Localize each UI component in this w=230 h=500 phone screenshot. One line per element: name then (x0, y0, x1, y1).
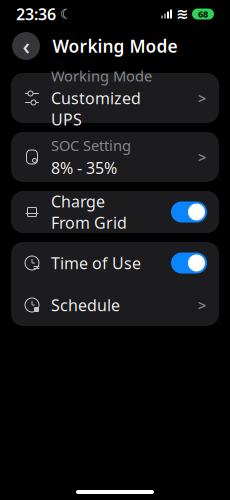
staticText: 68 (198, 8, 208, 20)
staticText: > (198, 147, 206, 167)
staticText: Working Mode (52, 34, 177, 57)
staticText: ≋ (176, 6, 188, 22)
staticText: Working Mode (51, 66, 152, 85)
staticText: 8% - 35% (51, 157, 117, 178)
button[interactable]: Charge From Grid (11, 191, 219, 233)
staticText: > (198, 295, 206, 315)
button[interactable]: Schedule (11, 284, 219, 326)
button[interactable]: SOC Setting (11, 132, 219, 182)
staticText: Charge From Grid (51, 191, 127, 233)
staticText: 23:36 (16, 3, 56, 25)
button[interactable]: Back (12, 32, 40, 60)
staticText: > (198, 88, 206, 108)
staticText: Time of Use (51, 252, 141, 274)
staticText: SOC Setting (51, 136, 131, 155)
staticText: ‹ (22, 31, 29, 61)
button[interactable]: Working Mode (11, 73, 219, 123)
staticText: Customized UPS (51, 87, 141, 130)
staticText: Schedule (51, 294, 120, 316)
staticText: ☾ (60, 6, 72, 21)
button[interactable]: Time of Use (11, 242, 219, 284)
